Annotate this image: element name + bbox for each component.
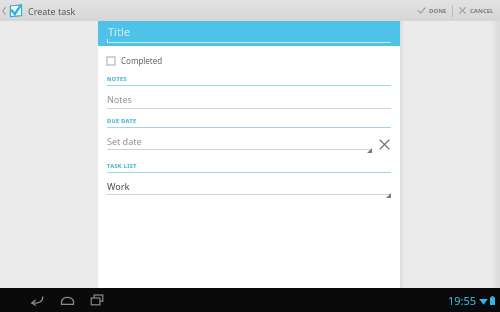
staticText: Work bbox=[107, 180, 130, 192]
button[interactable]: Recent apps bbox=[82, 289, 112, 311]
staticText: DUE DATE bbox=[107, 117, 137, 124]
other: Up bbox=[1, 5, 7, 17]
button[interactable]: 19:55 bbox=[448, 293, 500, 308]
staticText: Notes bbox=[107, 93, 132, 105]
staticText: Title bbox=[108, 24, 130, 39]
other: Battery bbox=[490, 296, 495, 305]
staticText: Completed bbox=[121, 55, 163, 66]
button[interactable]: Set date bbox=[107, 135, 372, 154]
staticText: DONE bbox=[429, 7, 447, 15]
button[interactable]: Clear due date bbox=[378, 138, 391, 151]
button[interactable]: DONE bbox=[412, 0, 452, 21]
staticText: CANCEL bbox=[470, 7, 494, 15]
staticText: Create task bbox=[28, 5, 76, 17]
staticText: 19:55 bbox=[448, 293, 477, 308]
button[interactable]: Home bbox=[52, 289, 82, 311]
button[interactable]: Completed bbox=[107, 53, 391, 68]
button[interactable]: CANCEL bbox=[453, 0, 500, 21]
staticText: Set date bbox=[107, 135, 142, 147]
button[interactable]: Notes bbox=[107, 93, 391, 109]
other: Tasks bbox=[8, 3, 23, 18]
staticText: NOTES bbox=[107, 75, 127, 82]
staticText: TASK LIST bbox=[107, 162, 137, 169]
button[interactable]: Work bbox=[107, 180, 391, 199]
button[interactable]: Back bbox=[22, 289, 52, 311]
other: Wi-Fi bbox=[479, 297, 488, 305]
button[interactable]: Up bbox=[0, 3, 82, 18]
button[interactable]: Title bbox=[98, 21, 400, 46]
